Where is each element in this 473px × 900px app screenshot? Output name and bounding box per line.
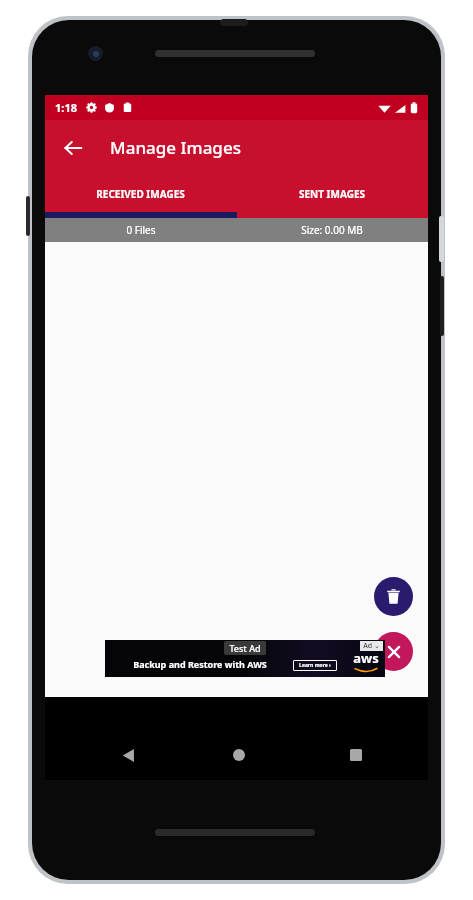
staticText: SENT IMAGES (299, 187, 365, 201)
button[interactable]: Learn more › (299, 662, 331, 669)
button[interactable]: RECEIVED IMAGES (45, 175, 236, 218)
staticText: Backup and Restore with AWS (133, 658, 267, 670)
staticText: Size: 0.00 MB (301, 223, 363, 237)
staticText: Test Ad (229, 642, 261, 654)
staticText: Learn more › (299, 662, 331, 669)
button[interactable]: Back (53, 128, 93, 168)
button[interactable]: SENT IMAGES (236, 175, 428, 218)
button[interactable]: Home (219, 735, 259, 775)
staticText: 0 Files (126, 223, 156, 237)
button[interactable]: Back (108, 735, 148, 775)
button[interactable]: Recent apps (336, 735, 376, 775)
staticText: 1:18 (55, 100, 77, 115)
button[interactable]: Close (374, 632, 413, 671)
staticText: RECEIVED IMAGES (96, 187, 185, 201)
button[interactable]: Test Ad (105, 640, 385, 677)
staticText: Ad ⌄ (363, 641, 380, 651)
staticText: aws (353, 649, 379, 667)
button[interactable]: Delete (374, 577, 413, 616)
staticText: Manage Images (110, 136, 241, 159)
